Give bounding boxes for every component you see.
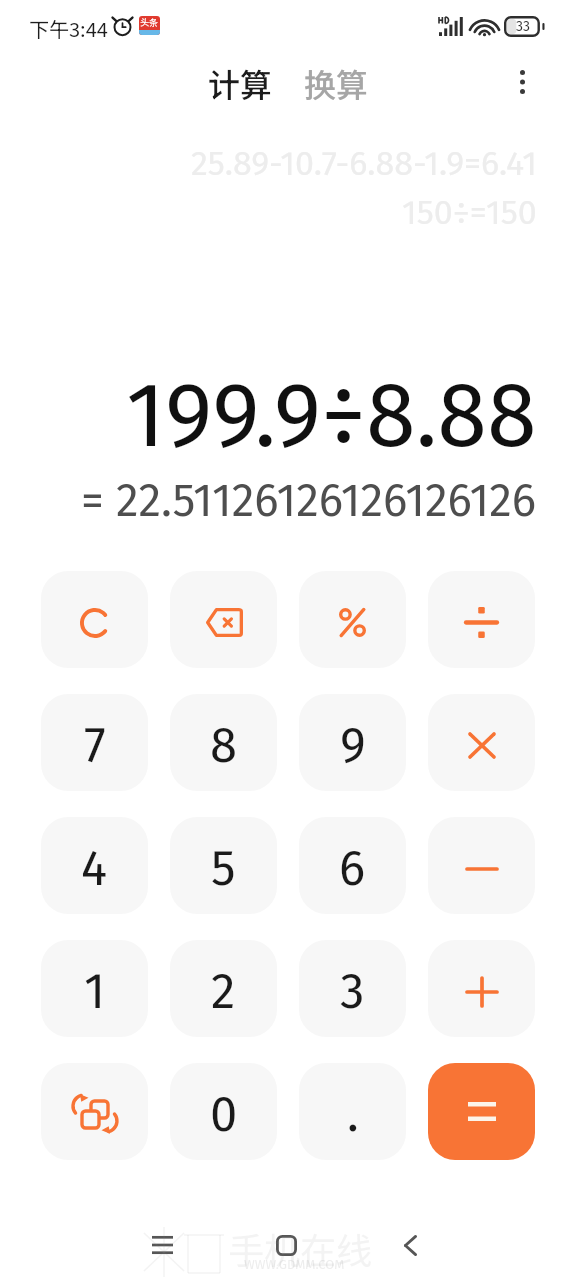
- button[interactable]: 5: [170, 817, 277, 914]
- button[interactable]: Recents: [139, 1222, 185, 1268]
- staticText: .: [347, 1085, 359, 1144]
- button[interactable]: Home: [263, 1222, 309, 1268]
- button[interactable]: 8: [170, 694, 277, 791]
- button[interactable]: Percent: [299, 571, 406, 668]
- button[interactable]: 9: [299, 694, 406, 791]
- button[interactable]: 2: [170, 940, 277, 1037]
- button[interactable]: .: [299, 1063, 406, 1160]
- staticText: 2: [211, 962, 236, 1021]
- button[interactable]: Multiply: [428, 694, 535, 791]
- button[interactable]: Minus: [428, 817, 535, 914]
- staticText: = 22.51126126126126126: [81, 473, 537, 528]
- staticText: 头条: [140, 16, 159, 29]
- staticText: 33: [516, 18, 530, 35]
- staticText: 5: [211, 839, 236, 898]
- staticText: WWW.GDMM.COM: [244, 1257, 345, 1273]
- button[interactable]: Delete: [170, 571, 277, 668]
- button[interactable]: 4: [41, 817, 148, 914]
- staticText: 计算: [208, 60, 273, 104]
- staticText: 150÷=150: [402, 192, 537, 233]
- button[interactable]: 7: [41, 694, 148, 791]
- staticText: 199.9÷8.88: [126, 362, 537, 470]
- staticText: 8: [210, 716, 237, 775]
- button[interactable]: Back: [387, 1222, 433, 1268]
- button[interactable]: Unit converter: [41, 1063, 148, 1160]
- staticText: 1: [84, 962, 106, 1021]
- staticText: 0: [210, 1085, 238, 1144]
- button[interactable]: 1: [41, 940, 148, 1037]
- button[interactable]: Equals: [428, 1063, 535, 1160]
- button[interactable]: 3: [299, 940, 406, 1037]
- staticText: 4: [81, 839, 108, 898]
- staticText: 下午3:44: [29, 14, 108, 43]
- staticText: 3: [340, 962, 365, 1021]
- button[interactable]: More options: [498, 58, 546, 106]
- staticText: 换算: [304, 60, 369, 104]
- staticText: 6: [339, 839, 366, 898]
- button[interactable]: Clear: [41, 571, 148, 668]
- button[interactable]: 计算: [202, 52, 279, 112]
- staticText: 手机在线: [228, 1222, 373, 1274]
- button[interactable]: 6: [299, 817, 406, 914]
- button[interactable]: Divide: [428, 571, 535, 668]
- button[interactable]: 0: [170, 1063, 277, 1160]
- button[interactable]: 换算: [298, 52, 375, 112]
- staticText: 25.89-10.7-6.88-1.9=6.41: [191, 143, 537, 184]
- staticText: 9: [340, 716, 366, 775]
- button[interactable]: Plus: [428, 940, 535, 1037]
- staticText: 7: [84, 716, 106, 775]
